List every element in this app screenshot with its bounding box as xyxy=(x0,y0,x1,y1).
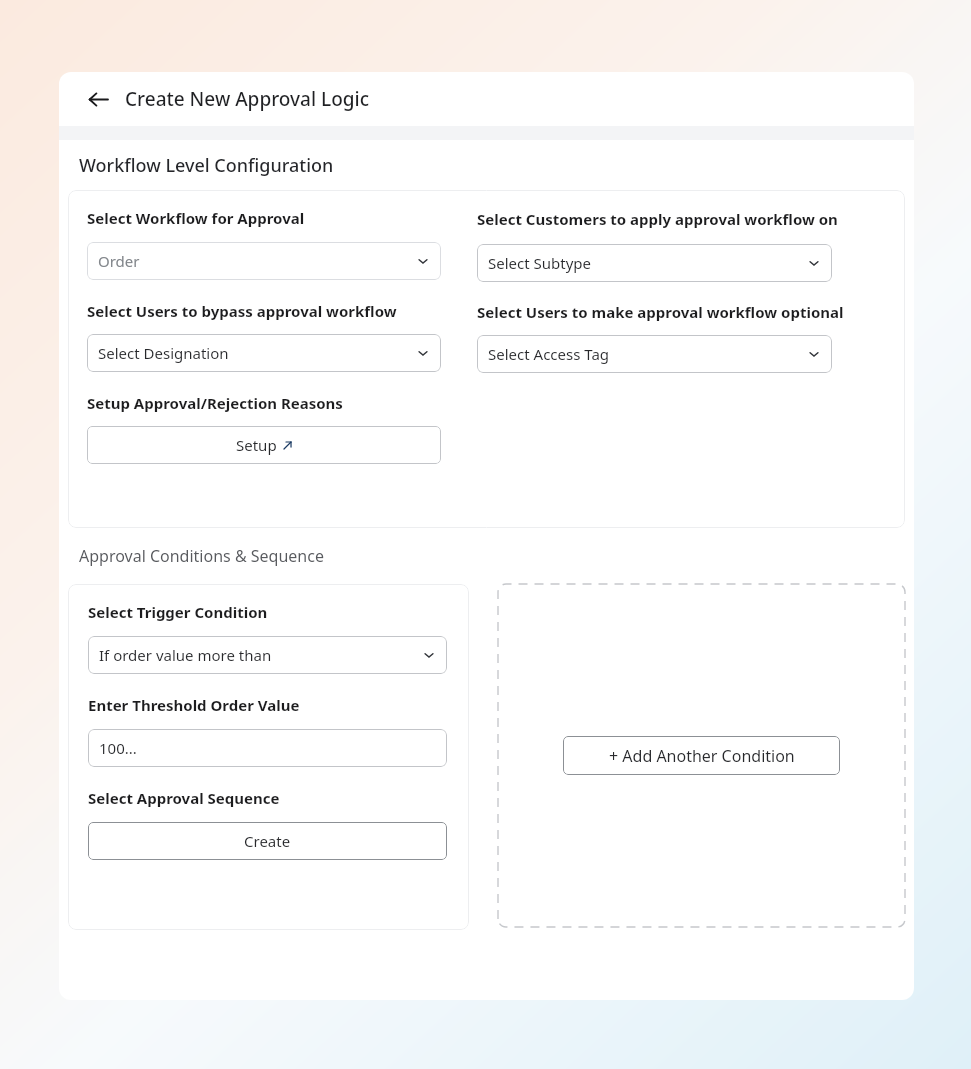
staticText: Select Users to bypass approval workflow xyxy=(87,301,397,321)
staticText: Select Subtype xyxy=(488,253,807,273)
staticText: Select Trigger Condition xyxy=(88,602,268,622)
staticText: Setup xyxy=(236,435,277,455)
staticText: If order value more than xyxy=(99,645,422,665)
staticText: Setup Approval/Rejection Reasons xyxy=(87,393,343,413)
staticText: Enter Threshold Order Value xyxy=(88,695,300,715)
staticText: Workflow Level Configuration xyxy=(79,153,334,178)
staticText: Select Approval Sequence xyxy=(88,788,280,808)
button[interactable]: If order value more than xyxy=(88,636,447,674)
staticText: + Add Another Condition xyxy=(609,745,795,767)
staticText: Select Designation xyxy=(98,343,416,363)
staticText: Create New Approval Logic xyxy=(125,86,369,112)
staticText: Create xyxy=(244,831,291,851)
staticText: Select Workflow for Approval xyxy=(87,208,305,228)
button[interactable]: Select Designation xyxy=(87,334,441,372)
button[interactable]: + Add Another Condition xyxy=(563,736,840,775)
button[interactable]: Setup xyxy=(87,426,441,464)
staticText: Select Users to make approval workflow o… xyxy=(477,302,844,322)
button[interactable]: 100... xyxy=(88,729,447,767)
staticText: Order xyxy=(98,251,416,271)
button[interactable]: Create xyxy=(88,822,447,860)
staticText: Approval Conditions & Sequence xyxy=(79,545,324,567)
button[interactable]: Back xyxy=(81,82,115,116)
staticText: 100... xyxy=(99,738,436,758)
button[interactable]: Select Access Tag xyxy=(477,335,832,373)
button[interactable]: Select Subtype xyxy=(477,244,832,282)
button[interactable]: Order xyxy=(87,242,441,280)
staticText: Select Customers to apply approval workf… xyxy=(477,209,838,229)
staticText: Select Access Tag xyxy=(488,344,807,364)
